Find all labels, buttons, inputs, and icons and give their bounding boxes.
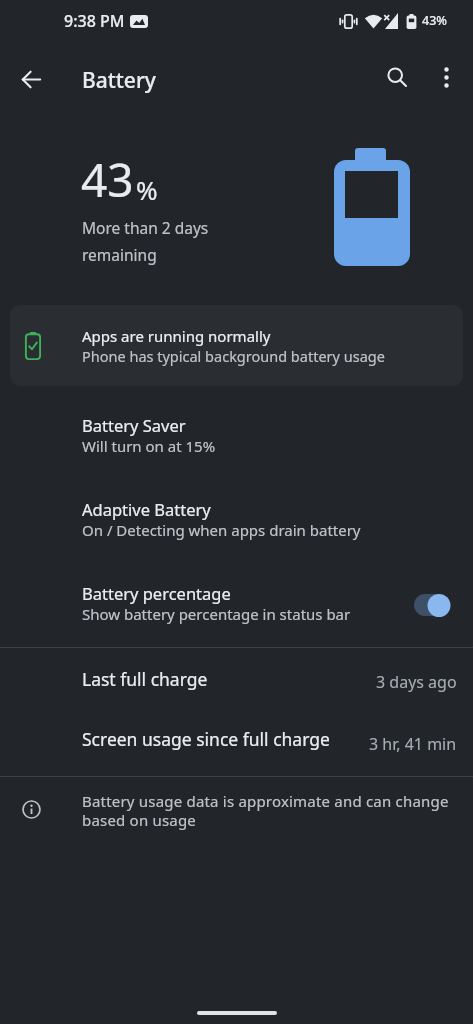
staticText: Show battery percentage in status bar [82,604,351,624]
staticText: Battery [82,66,156,95]
staticText: Apps are running normally [82,326,271,346]
staticText: 43 [81,148,134,211]
button[interactable]: Battery percentage [0,573,473,647]
staticText: Battery percentage [82,582,231,604]
staticText: Battery usage data is approximate and ca… [82,791,449,830]
staticText: % [136,172,158,207]
staticText: On / Detecting when apps drain battery [82,520,361,540]
button[interactable] [13,61,50,98]
button[interactable] [377,57,417,97]
button[interactable]: Adaptive Battery [0,489,473,573]
button[interactable] [426,57,466,97]
staticText: 9:38 PM [64,10,125,32]
staticText: Adaptive Battery [82,498,211,520]
staticText: Battery Saver [82,414,186,436]
staticText: Screen usage since full charge [82,727,330,751]
button[interactable]: Apps are running normally [10,305,463,386]
button[interactable]: Battery Saver [0,405,473,489]
staticText: Phone has typical background battery usa… [82,346,385,366]
staticText: More than 2 days remaining [82,217,209,265]
staticText: Last full charge [82,667,208,691]
staticText: 3 days ago [376,671,457,693]
button[interactable]: Screen usage since full charge [0,712,473,776]
staticText: 43% [422,12,447,29]
staticText: 3 hr, 41 min [369,733,457,755]
staticText: Will turn on at 15% [82,436,216,456]
button[interactable]: Last full charge [0,648,473,712]
